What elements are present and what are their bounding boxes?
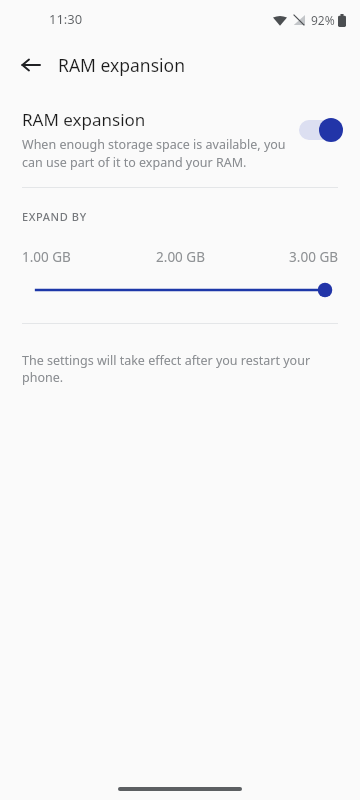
staticText: 92% — [311, 12, 335, 28]
staticText: The settings will take effect after you … — [22, 352, 338, 386]
button[interactable]: Expand by slider — [0, 279, 360, 301]
staticText: EXPAND BY — [22, 209, 87, 224]
staticText: RAM expansion — [22, 108, 146, 131]
staticText: 3.00 GB — [233, 248, 338, 266]
staticText: 11:30 — [49, 10, 83, 28]
staticText: 2.00 GB — [128, 248, 233, 266]
staticText: 1.00 GB — [22, 248, 128, 266]
button[interactable]: Back — [11, 45, 51, 85]
staticText: RAM expansion — [58, 53, 185, 77]
button[interactable]: RAM expansion — [0, 90, 360, 175]
staticText: When enough storage space is available, … — [22, 136, 290, 171]
button[interactable]: RAM expansion toggle — [298, 117, 344, 143]
